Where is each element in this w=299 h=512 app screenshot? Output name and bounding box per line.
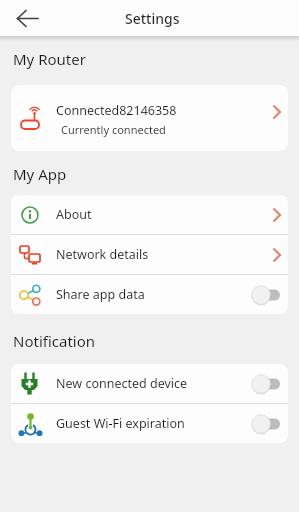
- staticText: My App: [13, 164, 67, 184]
- staticText: Guest Wi-Fi expiration: [56, 415, 185, 432]
- staticText: New connected device: [56, 375, 188, 392]
- button[interactable]: [10, 2, 44, 34]
- button[interactable]: About: [11, 195, 288, 234]
- button[interactable]: Share app data: [11, 275, 288, 314]
- button[interactable]: Network details: [11, 235, 288, 274]
- button[interactable]: New connected device: [11, 364, 288, 403]
- staticText: Network details: [56, 246, 149, 263]
- staticText: Settings: [125, 9, 180, 28]
- staticText: About: [56, 206, 92, 223]
- button[interactable]: Connected82146358: [11, 85, 288, 151]
- staticText: Currently connected: [61, 122, 166, 137]
- staticText: Notification: [13, 331, 96, 351]
- staticText: Connected82146358: [56, 102, 177, 119]
- staticText: My Router: [13, 49, 86, 69]
- staticText: Share app data: [56, 286, 145, 303]
- button[interactable]: Guest Wi-Fi expiration: [11, 404, 288, 443]
